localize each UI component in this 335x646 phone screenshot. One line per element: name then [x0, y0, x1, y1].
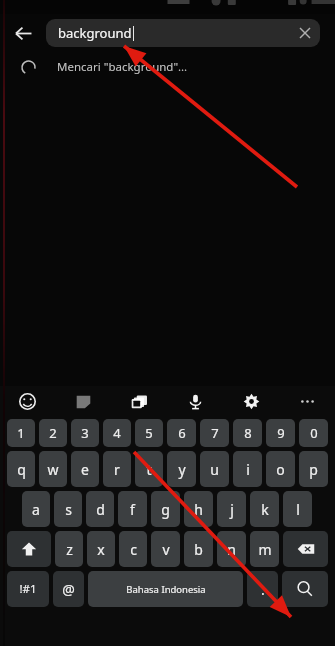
staticText: i — [246, 460, 250, 479]
button[interactable]: s — [54, 491, 82, 527]
button[interactable]: . — [247, 571, 278, 607]
button[interactable]: b — [184, 531, 213, 567]
button[interactable]: j — [217, 491, 246, 527]
staticText: 2 — [49, 424, 57, 442]
button[interactable]: 4 — [103, 419, 131, 447]
button[interactable]: 8 — [233, 419, 262, 447]
staticText: Bahasa Indonesia — [126, 583, 206, 596]
staticText: q — [17, 460, 26, 479]
button[interactable]: Search — [282, 571, 328, 607]
button[interactable]: o — [266, 451, 295, 487]
button[interactable]: q — [7, 451, 35, 487]
button[interactable]: Settings — [223, 386, 279, 416]
button[interactable]: f — [118, 491, 147, 527]
staticText: u — [210, 460, 219, 479]
button[interactable]: 2 — [39, 419, 67, 447]
staticText: b — [194, 540, 203, 559]
staticText: p — [309, 460, 318, 479]
button[interactable]: n — [217, 531, 246, 567]
staticText: n — [227, 540, 236, 559]
button[interactable]: u — [200, 451, 229, 487]
staticText: 3 — [81, 424, 89, 442]
staticText: e — [81, 460, 89, 479]
button[interactable]: g — [151, 491, 180, 527]
button[interactable]: Emoji — [0, 386, 55, 416]
button[interactable]: 7 — [200, 419, 229, 447]
button[interactable]: y — [167, 451, 196, 487]
button[interactable]: Bahasa Indonesia — [88, 571, 243, 607]
button[interactable]: Backspace — [283, 531, 328, 567]
button[interactable]: c — [119, 531, 147, 567]
button[interactable]: Mencari "background"… — [0, 52, 335, 82]
staticText: 5 — [145, 424, 153, 442]
button[interactable]: More options — [279, 386, 335, 416]
button[interactable]: GIF — [111, 386, 167, 416]
staticText: m — [258, 540, 272, 559]
staticText: d — [96, 500, 105, 519]
staticText: 7 — [211, 424, 219, 442]
staticText: o — [276, 460, 285, 479]
button[interactable]: Clear query — [292, 20, 318, 46]
staticText: !#1 — [19, 581, 37, 597]
staticText: 8 — [244, 424, 252, 442]
button[interactable]: 3 — [71, 419, 99, 447]
staticText: g — [161, 500, 170, 519]
staticText: h — [194, 500, 203, 519]
button[interactable]: a — [22, 491, 50, 527]
button[interactable]: l — [283, 491, 312, 527]
button[interactable]: t — [135, 451, 163, 487]
staticText: t — [146, 460, 152, 479]
button[interactable]: z — [55, 531, 83, 567]
staticText: r — [114, 460, 120, 479]
button[interactable]: 6 — [167, 419, 196, 447]
button[interactable]: 9 — [266, 419, 295, 447]
staticText: 9 — [277, 424, 285, 442]
button[interactable]: e — [71, 451, 99, 487]
staticText: background — [58, 24, 132, 42]
staticText: 4 — [113, 424, 121, 442]
staticText: 1 — [17, 424, 25, 442]
staticText: a — [32, 500, 40, 519]
staticText: 0 — [310, 424, 318, 442]
button[interactable]: 0 — [299, 419, 328, 447]
button[interactable]: Stickers — [55, 386, 111, 416]
button[interactable]: k — [250, 491, 279, 527]
staticText: @ — [62, 580, 75, 599]
button[interactable]: Shift — [7, 531, 51, 567]
staticText: c — [130, 540, 137, 559]
staticText: s — [65, 500, 72, 519]
staticText: k — [261, 500, 269, 519]
staticText: . — [261, 580, 265, 599]
button[interactable]: @ — [53, 571, 84, 607]
button[interactable]: p — [299, 451, 328, 487]
button[interactable]: Back — [0, 14, 46, 52]
button[interactable]: x — [87, 531, 115, 567]
staticText: Mencari "background"… — [57, 59, 188, 75]
button[interactable]: r — [103, 451, 131, 487]
staticText: 6 — [178, 424, 186, 442]
staticText: j — [230, 500, 234, 519]
staticText: w — [47, 460, 59, 479]
staticText: v — [162, 540, 170, 559]
button[interactable]: Voice input — [167, 386, 223, 416]
button[interactable]: h — [184, 491, 213, 527]
button[interactable]: d — [86, 491, 114, 527]
staticText: y — [178, 460, 186, 479]
button[interactable]: !#1 — [7, 571, 49, 607]
button[interactable]: w — [39, 451, 67, 487]
staticText: x — [97, 540, 105, 559]
button[interactable]: v — [151, 531, 180, 567]
button[interactable]: m — [250, 531, 279, 567]
staticText: z — [66, 540, 73, 559]
button[interactable]: 5 — [135, 419, 163, 447]
staticText: l — [296, 500, 300, 519]
button[interactable]: 1 — [7, 419, 35, 447]
button[interactable]: i — [233, 451, 262, 487]
button[interactable]: background — [46, 19, 320, 47]
staticText: f — [130, 500, 135, 519]
